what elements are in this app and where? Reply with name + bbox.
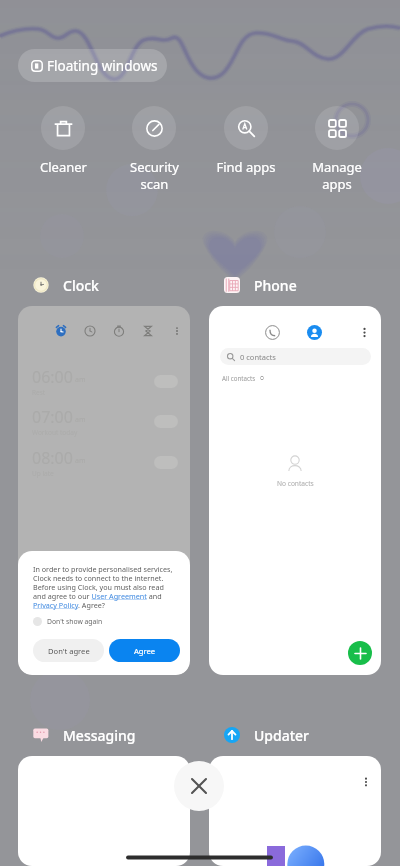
button[interactable]: Floating windows	[18, 49, 167, 82]
staticText: Clock	[63, 276, 99, 295]
button[interactable]	[154, 456, 178, 469]
button[interactable]: Close all	[174, 761, 224, 811]
staticText: Cleaner	[40, 158, 87, 176]
staticText: Floating windows	[47, 57, 158, 75]
staticText: 0 contacts	[240, 352, 276, 362]
staticText: Security scan	[130, 158, 179, 193]
button[interactable]: Clock	[33, 275, 99, 295]
button[interactable]: Security scan	[109, 106, 199, 193]
staticText: Phone	[254, 276, 297, 295]
staticText: In order to provide personalised service…	[33, 564, 178, 610]
button[interactable]: Messaging	[33, 725, 136, 745]
button[interactable]: Updater	[224, 725, 310, 745]
button[interactable]: Manage apps	[292, 106, 382, 193]
staticText: 08:00	[32, 447, 73, 469]
staticText: All contacts	[222, 374, 256, 382]
button[interactable]: 0 contacts	[209, 306, 381, 675]
staticText: Manage apps	[312, 158, 362, 193]
button[interactable]: Find apps	[201, 106, 291, 176]
staticText: Don't show again	[47, 617, 103, 626]
button[interactable]	[209, 756, 381, 866]
button[interactable]	[18, 756, 190, 866]
staticText: Agree	[134, 646, 156, 656]
button[interactable]: Phone	[224, 275, 297, 295]
button[interactable]: 0 contacts	[220, 348, 371, 365]
button[interactable]: Don't agree	[33, 639, 104, 662]
button[interactable]: Add contact	[348, 641, 372, 665]
button[interactable]: All contacts	[222, 374, 265, 382]
staticText: Messaging	[63, 726, 136, 745]
staticText: Updater	[254, 726, 310, 745]
staticText: 07:00	[32, 406, 73, 428]
button[interactable]	[154, 415, 178, 428]
button[interactable]: Agree	[109, 639, 180, 662]
button[interactable]: Cleaner	[18, 106, 108, 176]
button[interactable]	[154, 375, 178, 388]
staticText: Find apps	[216, 158, 276, 176]
button[interactable]: Don't show again	[33, 617, 103, 626]
staticText: 06:00	[32, 366, 73, 388]
staticText: Don't agree	[48, 646, 90, 656]
staticText: No contacts	[277, 479, 314, 488]
button[interactable]: 06:00	[18, 306, 190, 675]
